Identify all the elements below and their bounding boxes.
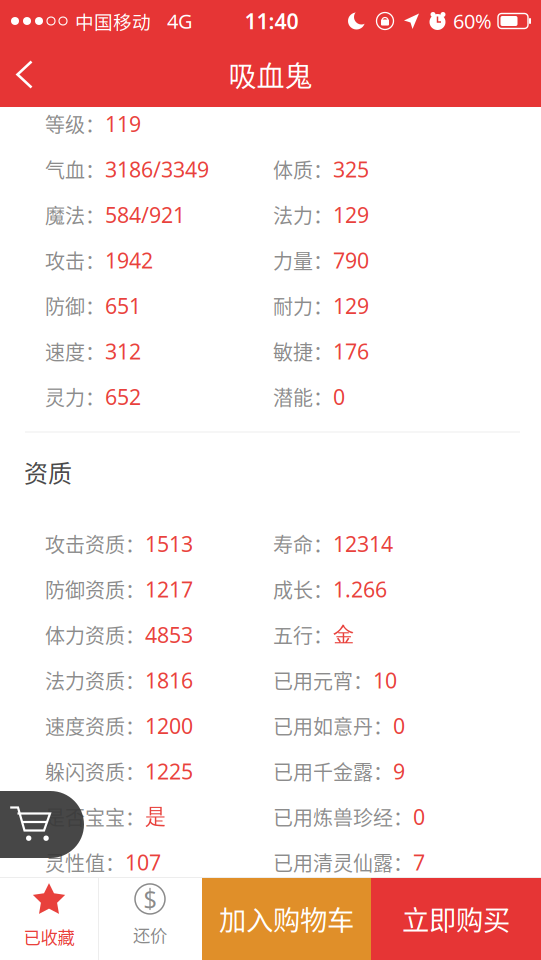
button[interactable]: Back [0, 42, 56, 107]
button[interactable]: 加入购物车 [202, 877, 371, 960]
staticText: 0 [393, 712, 405, 740]
staticText: 法力： [273, 200, 333, 229]
staticText: 652 [105, 383, 141, 411]
staticText: 已用千金露： [273, 757, 393, 786]
staticText: 790 [333, 246, 369, 274]
staticText: 已用炼兽珍经： [273, 802, 413, 831]
staticText: 耐力： [273, 291, 333, 320]
button[interactable]: 已收藏 [0, 877, 98, 960]
staticText: 灵性值： [45, 848, 125, 877]
staticText: 107 [125, 848, 161, 876]
staticText: 0 [413, 803, 425, 831]
staticText: 体质： [273, 155, 333, 184]
button[interactable]: S [98, 877, 202, 960]
staticText: 1217 [145, 575, 193, 603]
staticText: 是否宝宝： [45, 802, 145, 831]
staticText: 10 [373, 666, 397, 694]
staticText: 已用元宵： [273, 666, 373, 695]
staticText: 7 [413, 848, 425, 876]
staticText: 4853 [145, 621, 193, 649]
staticText: 176 [333, 337, 369, 365]
staticText: 等级： [45, 109, 105, 138]
staticText: 魔法： [45, 200, 105, 229]
staticText: 4G [167, 8, 193, 34]
staticText: 吸血鬼 [228, 54, 312, 95]
staticText: 3186/3349 [105, 155, 209, 183]
staticText: 攻击资质： [45, 529, 145, 558]
staticText: 1225 [145, 757, 193, 785]
staticText: 寿命： [273, 529, 333, 558]
staticText: 成长： [273, 575, 333, 604]
staticText: 9 [393, 757, 405, 785]
staticText: 防御资质： [45, 575, 145, 604]
staticText: 五行： [273, 620, 333, 649]
staticText: 躲闪资质： [45, 757, 145, 786]
staticText: 灵力： [45, 382, 105, 411]
staticText: 325 [333, 155, 369, 183]
staticText: 加入购物车 [219, 899, 354, 938]
staticText: 潜能： [273, 382, 333, 411]
staticText: 防御： [45, 291, 105, 320]
staticText: 129 [333, 292, 369, 320]
staticText: 是 [145, 804, 166, 830]
staticText: 速度： [45, 337, 105, 366]
staticText: 法力资质： [45, 666, 145, 695]
button[interactable]: Shopping cart [0, 791, 84, 858]
staticText: 金 [333, 622, 354, 648]
staticText: 已用如意丹： [273, 711, 393, 740]
button[interactable]: 立即购买 [371, 877, 541, 960]
staticText: 12314 [333, 530, 393, 558]
staticText: 1.266 [333, 575, 387, 603]
staticText: 速度资质： [45, 711, 145, 740]
staticText: 11:40 [244, 7, 298, 35]
staticText: S [143, 883, 156, 915]
staticText: 584/921 [105, 201, 185, 229]
staticText: 1513 [145, 530, 193, 558]
staticText: 敏捷： [273, 337, 333, 366]
staticText: 体力资质： [45, 620, 145, 649]
staticText: 气血： [45, 155, 105, 184]
staticText: 已收藏 [23, 924, 74, 949]
staticText: 60% [453, 8, 492, 34]
staticText: 已用清灵仙露： [273, 848, 413, 877]
staticText: 资质 [24, 454, 72, 489]
staticText: 312 [105, 337, 141, 365]
staticText: 攻击： [45, 246, 105, 275]
staticText: 651 [105, 292, 141, 320]
staticText: 1942 [105, 246, 153, 274]
staticText: 1816 [145, 666, 193, 694]
staticText: 中国移动 [75, 7, 151, 34]
staticText: 立即购买 [402, 899, 510, 938]
staticText: 还价 [133, 922, 167, 947]
staticText: 119 [105, 110, 141, 138]
staticText: 0 [333, 383, 345, 411]
staticText: 1200 [145, 712, 193, 740]
staticText: 力量： [273, 246, 333, 275]
staticText: 129 [333, 201, 369, 229]
